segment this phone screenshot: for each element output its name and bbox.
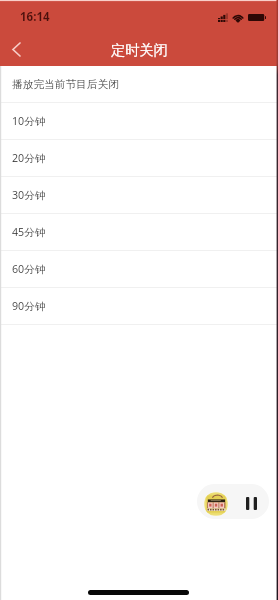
staticText: 30分钟 [12,188,46,203]
staticText: 播放完当前节目后关闭 [12,78,119,91]
button[interactable]: 45分钟 [0,214,278,250]
staticText: 10分钟 [12,114,46,129]
staticText: 16:14 [20,9,50,25]
button[interactable]: Pause [240,492,262,514]
staticText: 定时关闭 [111,41,168,59]
button[interactable]: 10分钟 [0,103,278,139]
button[interactable]: 20分钟 [0,140,278,176]
staticText: 45分钟 [12,225,46,240]
button[interactable]: Back [0,33,33,66]
button[interactable]: 播放完当前节目后关闭 [0,66,278,102]
button[interactable]: 30分钟 [0,177,278,213]
button[interactable]: 90分钟 [0,288,278,324]
staticText: 90分钟 [12,299,46,314]
staticText: 60分钟 [12,262,46,277]
staticText: 20分钟 [12,151,46,166]
button[interactable]: 60分钟 [0,251,278,287]
button[interactable]: Now playing [204,492,228,516]
